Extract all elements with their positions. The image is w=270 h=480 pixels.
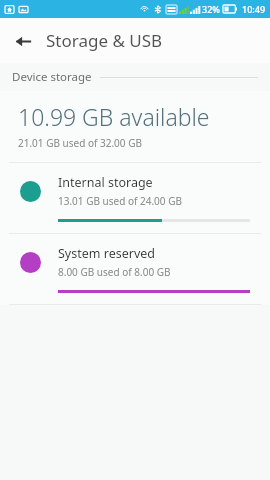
staticText: 10:49 xyxy=(242,3,266,15)
staticText: 8.00 GB used of 8.00 GB xyxy=(58,265,171,279)
staticText: System reserved xyxy=(58,245,155,262)
button[interactable]: Internal storage xyxy=(0,163,270,233)
staticText: Storage & USB xyxy=(46,29,163,52)
staticText: 32% xyxy=(202,3,220,15)
button[interactable]: Back xyxy=(6,24,40,58)
staticText: 21.01 GB used of 32.00 GB xyxy=(18,136,142,150)
button[interactable]: System reserved xyxy=(0,234,270,304)
staticText: 13.01 GB used of 24.00 GB xyxy=(58,194,182,208)
staticText: Device storage xyxy=(12,69,92,85)
staticText: 10.99 GB available xyxy=(18,101,210,132)
button[interactable]: 10.99 GB available xyxy=(0,91,270,162)
staticText: Internal storage xyxy=(58,174,153,191)
